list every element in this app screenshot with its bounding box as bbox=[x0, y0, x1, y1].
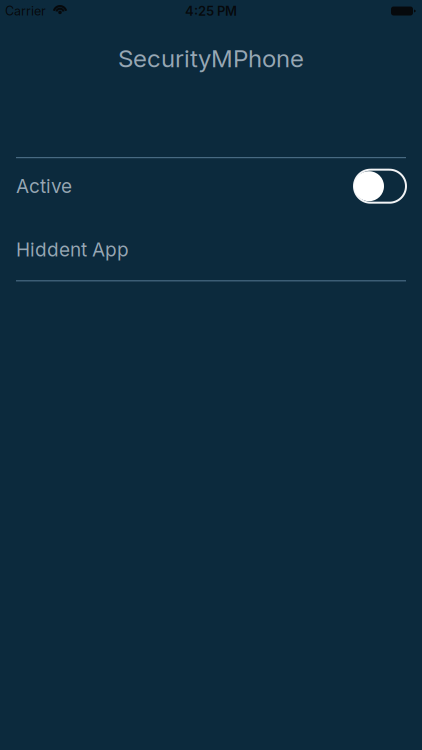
button[interactable]: Hiddent App bbox=[0, 219, 422, 280]
staticText: Carrier bbox=[5, 3, 46, 18]
staticText: Active bbox=[16, 175, 72, 198]
staticText: SecurityMPhone bbox=[118, 44, 304, 73]
button[interactable]: Active bbox=[354, 170, 406, 203]
staticText: 4:25 PM bbox=[185, 3, 237, 19]
staticText: Hiddent App bbox=[16, 238, 129, 261]
